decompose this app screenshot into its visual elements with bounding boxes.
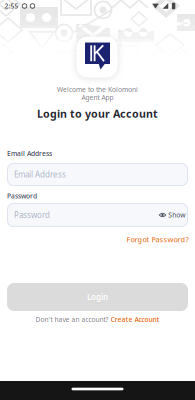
staticText: Don't have an account? [35,315,108,324]
button[interactable]: Forgot Password? [126,234,188,244]
staticText: Password [7,192,37,200]
staticText: 2:55 [4,2,18,10]
staticText: Welcome to the Kolomoni [57,85,138,94]
staticText: Show [168,211,185,219]
staticText: Login to your Account [37,106,158,121]
button[interactable]: Create Account [110,315,159,324]
staticText: Email Address [7,149,52,158]
staticText: Forgot Password? [126,234,188,244]
staticText: Password [14,210,50,220]
staticText: Agent App [81,93,113,102]
button[interactable]: Email Address [7,163,188,186]
staticText: Login [87,292,108,302]
staticText: Create Account [110,315,159,324]
button[interactable]: Show password [157,208,187,222]
button[interactable]: Password [7,203,188,227]
staticText: Email Address [14,169,66,180]
button[interactable]: Login [7,283,188,311]
